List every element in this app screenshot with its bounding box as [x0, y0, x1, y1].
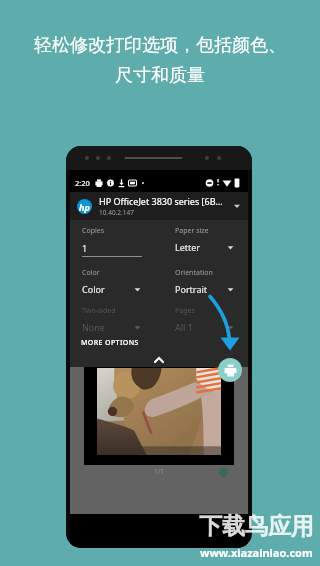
staticText: Color — [82, 268, 100, 278]
staticText: 1 — [82, 242, 88, 254]
staticText: www.xiazainiao.com — [200, 545, 313, 560]
button[interactable]: Orientation — [175, 268, 235, 295]
staticText: None — [82, 321, 133, 333]
staticText: Two-sided — [82, 306, 116, 316]
button[interactable]: Paper size — [175, 226, 235, 253]
button[interactable]: Pages — [175, 306, 235, 333]
staticText: 下载鸟应用 — [199, 512, 314, 541]
staticText: Pages — [175, 306, 195, 316]
staticText: All 1 — [175, 321, 226, 333]
staticText: Paper size — [175, 226, 209, 236]
staticText: 10.40.2.147 — [99, 208, 134, 217]
staticText: HP OfficeJet 3830 series [6B… — [99, 195, 223, 207]
staticText: 2:20 — [75, 178, 90, 188]
button[interactable]: Copies — [82, 226, 142, 257]
button[interactable]: Two-sided — [82, 306, 142, 333]
button[interactable]: Selected — [219, 468, 228, 477]
button[interactable]: Print — [218, 358, 242, 382]
button[interactable]: Color — [82, 268, 142, 295]
staticText: 1/1 — [154, 467, 165, 477]
staticText: 尺寸和质量 — [115, 64, 205, 87]
staticText: hp — [79, 201, 90, 213]
staticText: Color — [82, 283, 133, 295]
staticText: Letter — [175, 241, 226, 253]
button[interactable]: MORE OPTIONS — [81, 338, 139, 348]
staticText: 轻松修改打印选项，包括颜色、 — [34, 34, 286, 57]
button[interactable]: hp — [70, 192, 248, 220]
staticText: Orientation — [175, 268, 213, 278]
staticText: Portrait — [175, 283, 226, 295]
staticText: Copies — [82, 226, 105, 236]
